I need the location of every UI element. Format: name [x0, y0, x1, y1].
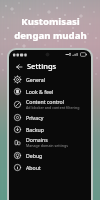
button[interactable]: Backup: [9, 123, 91, 135]
staticText: About: [26, 164, 41, 171]
staticText: Ad blocker and content filtering: [26, 105, 80, 110]
button[interactable]: Back: [13, 61, 24, 72]
button[interactable]: About: [9, 161, 91, 173]
staticText: Domains: [26, 136, 48, 143]
staticText: Debug: [26, 152, 43, 159]
button[interactable]: Debug: [9, 149, 91, 161]
button[interactable]: Content control: [9, 97, 91, 111]
staticText: Manage domain settings: [26, 143, 68, 148]
button[interactable]: Domains: [9, 135, 91, 149]
staticText: Kustomisasi: [21, 15, 80, 28]
staticText: Content control: [26, 98, 65, 105]
button[interactable]: Look & feel: [9, 85, 91, 97]
button[interactable]: Privacy: [9, 111, 91, 123]
staticText: General: [26, 76, 46, 83]
staticText: Settings: [27, 61, 57, 71]
staticText: Privacy: [26, 114, 44, 121]
button[interactable]: General: [9, 73, 91, 85]
staticText: Look & feel: [26, 88, 54, 95]
staticText: dengan mudah: [14, 29, 87, 42]
staticText: Backup: [26, 126, 44, 133]
